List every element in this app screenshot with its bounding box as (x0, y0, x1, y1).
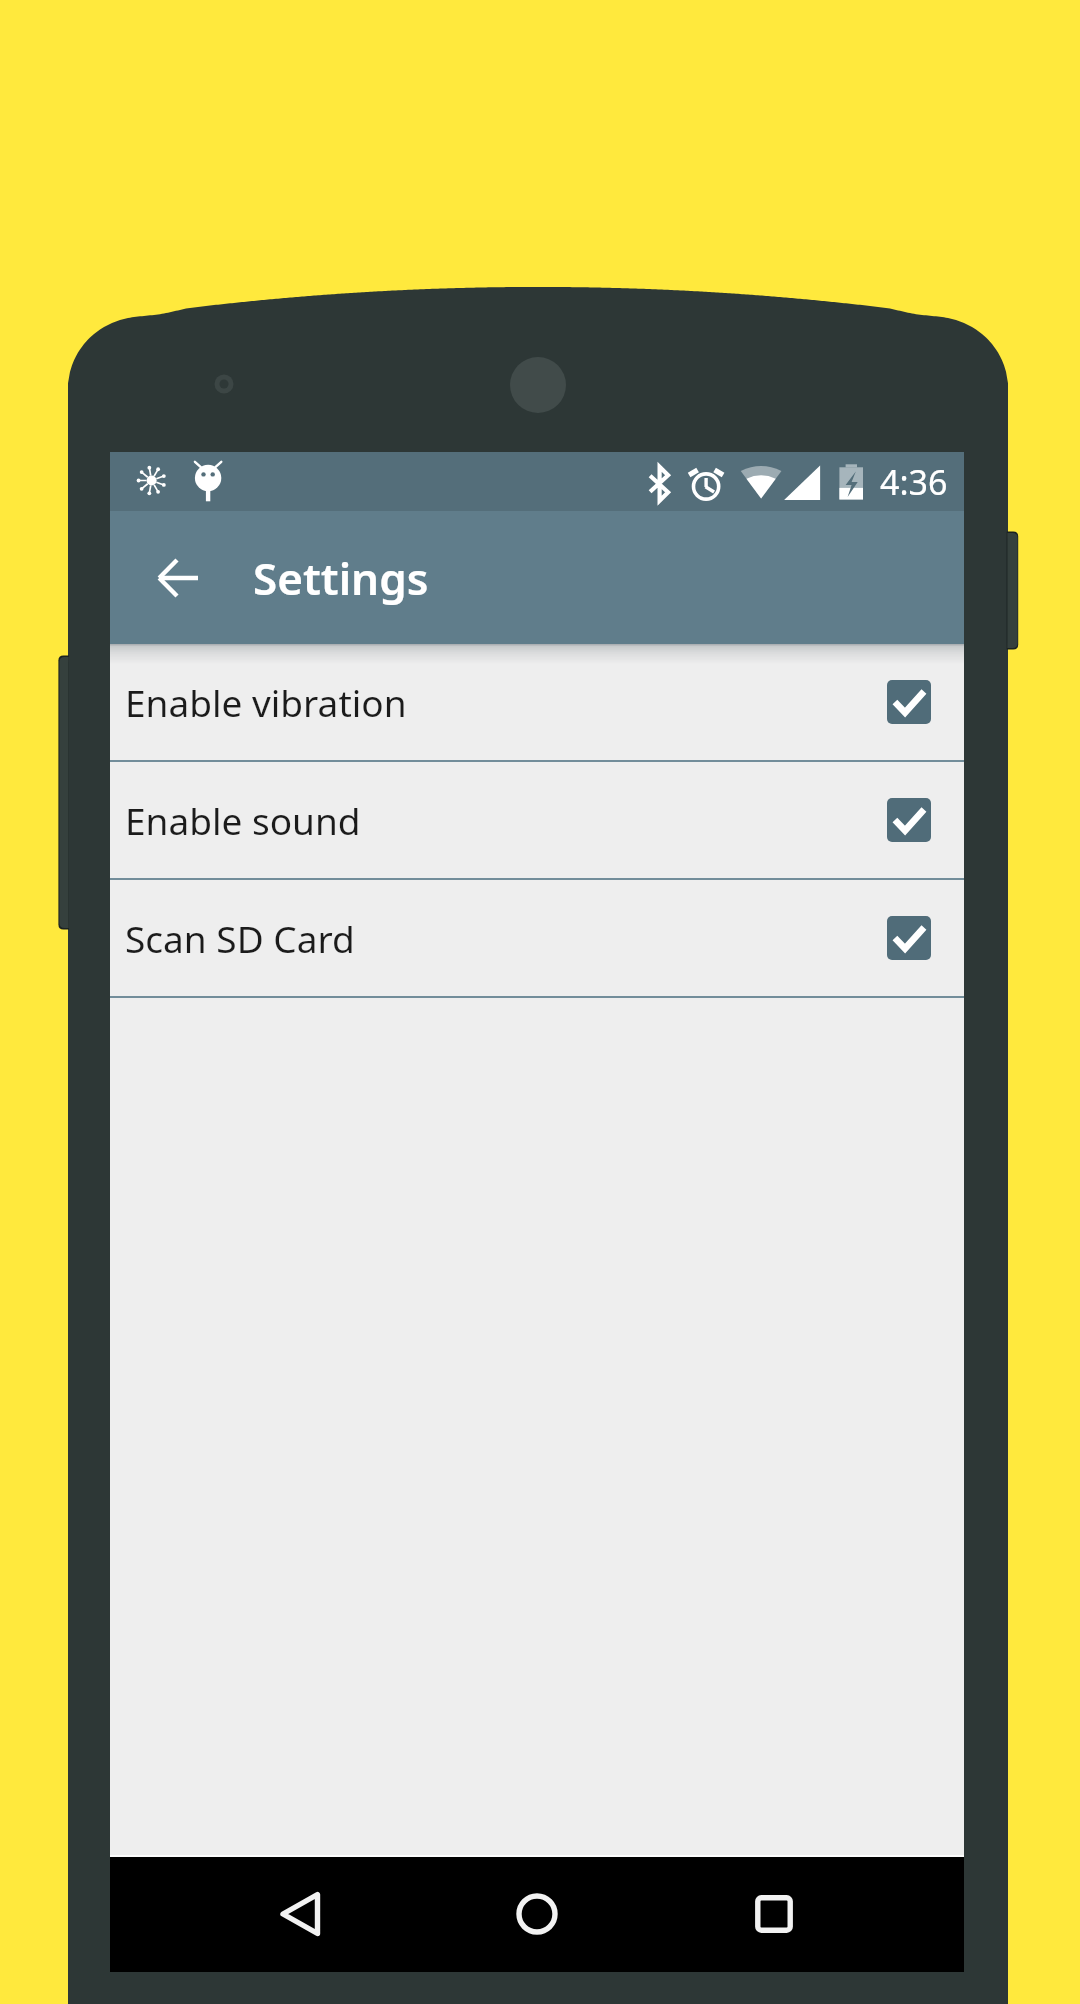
button[interactable]: Home (481, 1858, 593, 1970)
button[interactable]: Enable vibration (110, 644, 964, 760)
button[interactable]: Back (244, 1858, 356, 1970)
button[interactable]: Enable sound, checked (887, 798, 931, 842)
staticText: Scan SD Card (125, 913, 887, 963)
button[interactable]: Scan SD Card (110, 880, 964, 996)
button[interactable]: Enable vibration, checked (887, 680, 931, 724)
staticText: 4:36 (880, 459, 948, 505)
staticText: Settings (253, 548, 429, 608)
staticText: Enable sound (125, 795, 887, 845)
button[interactable]: Scan SD Card, checked (887, 916, 931, 960)
button[interactable]: Enable sound (110, 762, 964, 878)
staticText: Enable vibration (125, 677, 887, 727)
button[interactable]: Recent apps (718, 1858, 830, 1970)
button[interactable]: Back (130, 530, 226, 626)
